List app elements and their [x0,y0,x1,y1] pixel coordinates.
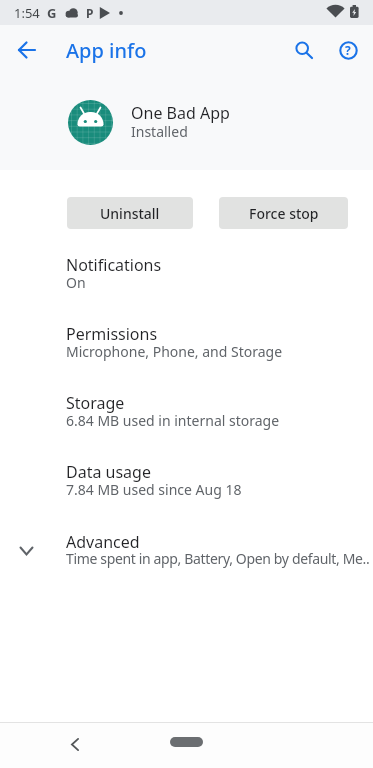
staticText: Advanced [66,531,140,553]
staticText: Installed [131,122,188,141]
button[interactable]: Data usage [0,461,373,521]
button[interactable]: Permissions [0,323,373,383]
button[interactable]: Force stop [219,197,348,229]
button[interactable] [15,38,39,62]
staticText: On [66,273,86,292]
staticText: Microphone, Phone, and Storage [66,342,283,361]
button[interactable]: ? [336,38,360,62]
button[interactable]: Storage [0,392,373,452]
button[interactable]: Uninstall [67,197,193,229]
staticText: Force stop [249,204,319,223]
staticText: Time spent in app, Battery, Open by defa… [66,549,370,568]
staticText: Data usage [66,461,151,483]
button[interactable] [170,737,203,747]
staticText: App info [66,37,147,64]
staticText: Permissions [66,323,158,345]
staticText: 6.84 MB used in internal storage [66,411,280,430]
staticText: 7.84 MB used since Aug 18 [66,480,242,499]
button[interactable] [291,36,315,60]
staticText: Notifications [66,254,162,276]
staticText: One Bad App [131,102,230,124]
staticText: P [86,5,94,21]
button[interactable]: Notifications [0,254,373,314]
staticText: Uninstall [100,204,160,223]
staticText: ? [345,42,351,58]
staticText: Storage [66,392,125,414]
staticText: 1:54 [14,4,40,22]
button[interactable] [63,732,87,756]
button[interactable]: Advanced [0,531,373,577]
staticText: G [47,4,57,22]
